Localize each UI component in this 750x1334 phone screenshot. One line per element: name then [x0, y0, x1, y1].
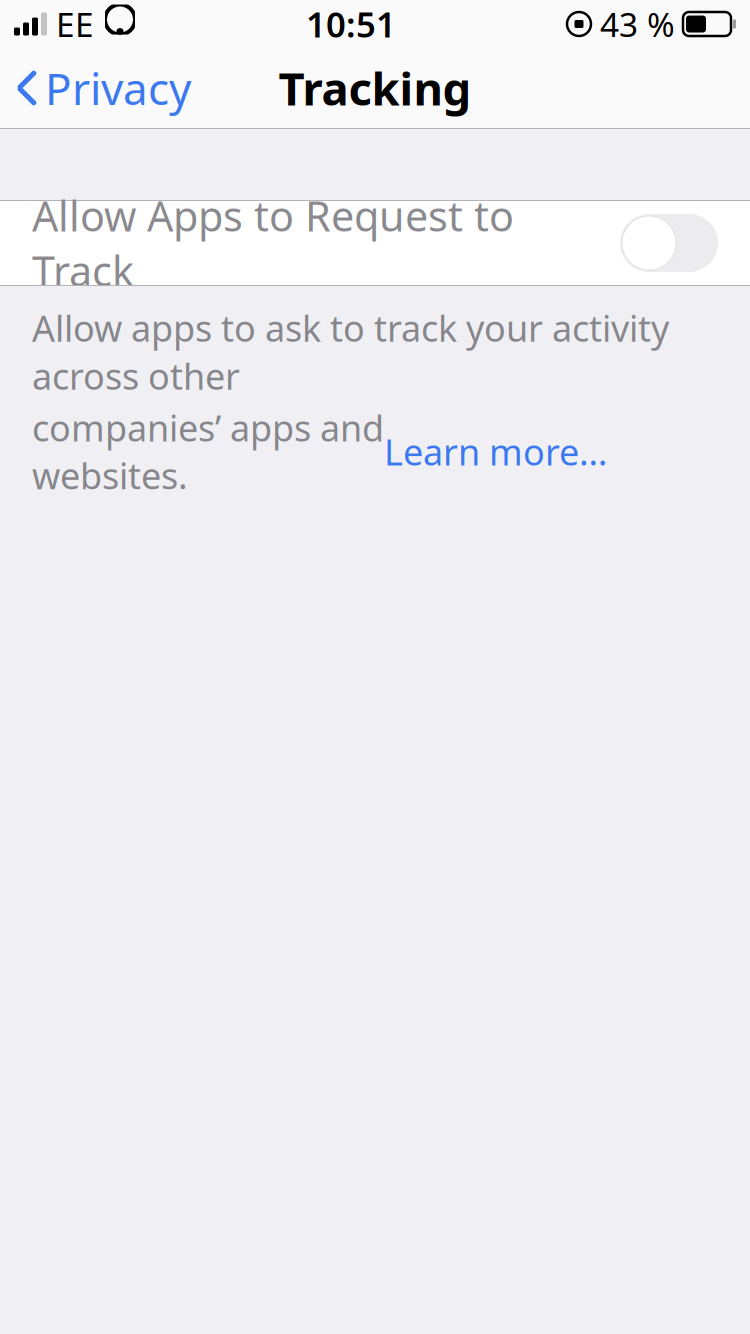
staticText: Allow apps to ask to track your activity… — [32, 304, 669, 400]
staticText: Tracking — [278, 58, 471, 118]
staticText: Allow Apps to Request to Track — [32, 188, 514, 298]
staticText: Learn more… — [384, 427, 607, 475]
staticText: companies’ apps and websites. — [32, 404, 384, 499]
button[interactable]: Allow Apps to Request to Track — [0, 201, 750, 285]
button[interactable]: Learn more… — [384, 427, 607, 475]
staticText: Privacy — [45, 59, 191, 117]
button[interactable]: Privacy — [0, 49, 191, 127]
staticText: 10:51 — [306, 1, 396, 47]
staticText: 43 % — [600, 2, 675, 46]
staticText: EE — [56, 2, 94, 46]
